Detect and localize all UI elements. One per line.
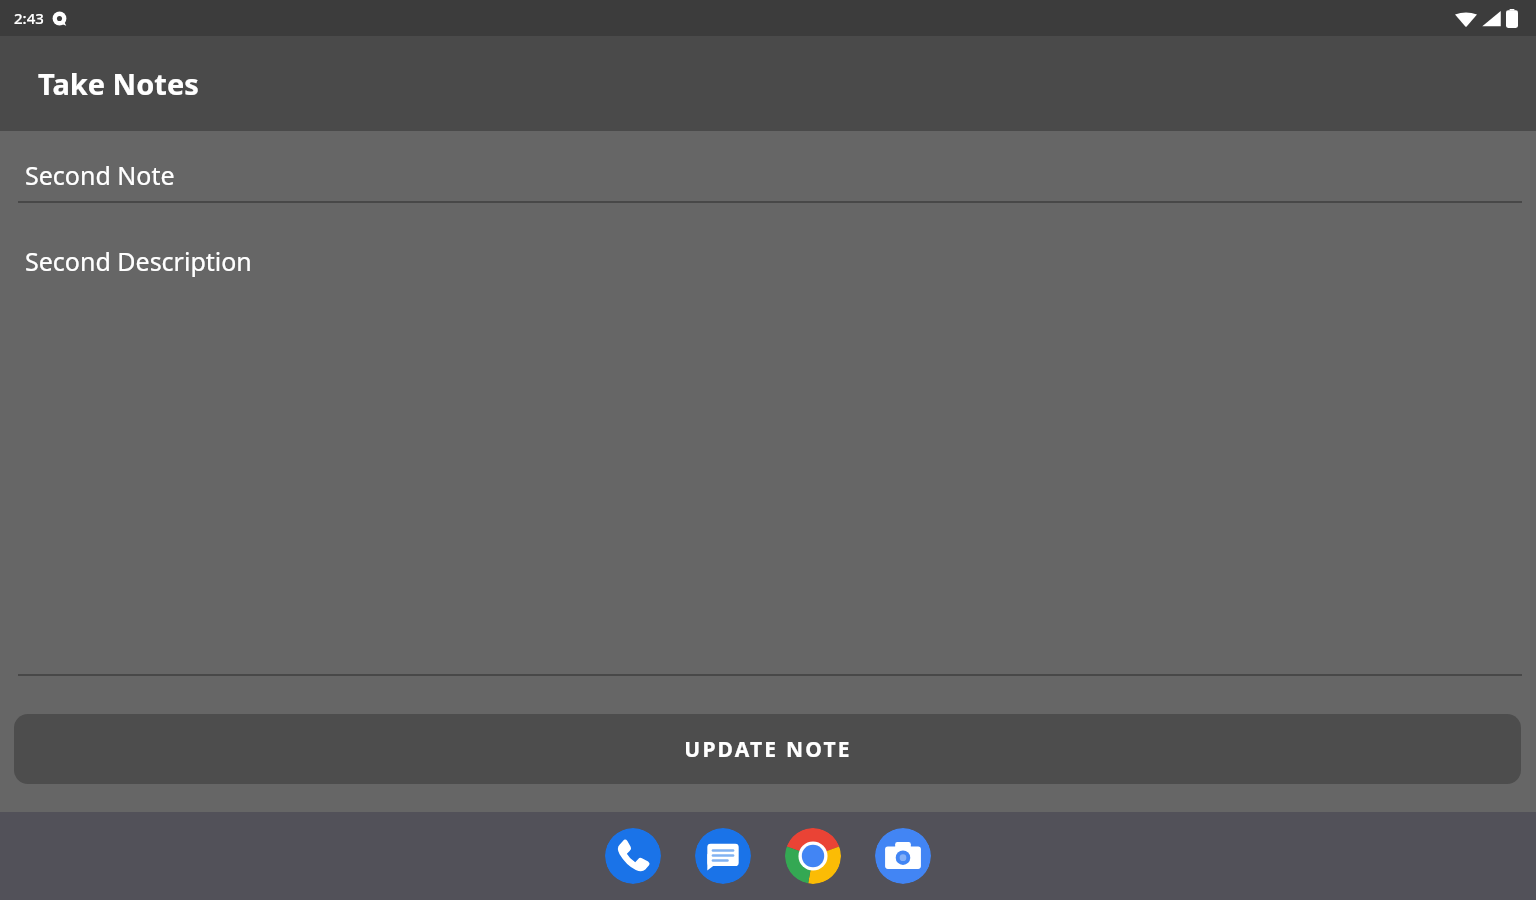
button[interactable]: Camera (875, 828, 931, 884)
button[interactable]: Messages (695, 828, 751, 884)
staticText: Second Description (25, 244, 252, 278)
staticText: 2:43 (14, 8, 44, 28)
staticText: UPDATE NOTE (684, 735, 852, 764)
staticText: Take Notes (38, 64, 199, 103)
button[interactable]: Second Note (0, 131, 1536, 203)
button[interactable]: Phone (605, 828, 661, 884)
button[interactable]: Chrome (785, 828, 841, 884)
button[interactable]: UPDATE NOTE (14, 714, 1521, 784)
staticText: Second Note (25, 158, 175, 192)
button[interactable]: Second Description (0, 203, 1536, 676)
